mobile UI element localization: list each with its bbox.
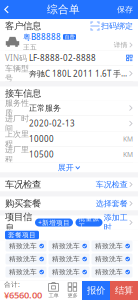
staticText: 进厂时间	[5, 114, 29, 133]
staticText: 进厂里程	[5, 145, 29, 164]
staticText: 自费	[64, 34, 74, 40]
button[interactable]: 精致洗车	[5, 240, 46, 251]
button[interactable]: 粤B88888	[0, 33, 138, 50]
staticText: 合计:	[4, 280, 20, 289]
staticText: 添加工时	[104, 213, 128, 232]
staticText: 车辆型号	[5, 64, 29, 83]
staticText: 上次里程	[5, 129, 29, 149]
button[interactable]: 上次里程	[0, 131, 138, 147]
staticText: VIN码	[5, 53, 27, 63]
staticText: 正常服务	[29, 103, 61, 113]
staticText: 精致洗车	[95, 242, 123, 250]
staticText: 粤B88888	[23, 32, 61, 42]
staticText: 车况检查	[96, 180, 128, 189]
staticText: 工单	[48, 292, 58, 299]
button[interactable]: 保存	[112, 0, 138, 19]
button[interactable]: VIN码	[0, 50, 138, 66]
button[interactable]: +新增项目	[35, 218, 73, 226]
button[interactable]: 报价	[82, 281, 110, 300]
button[interactable]: 精致洗车	[5, 266, 46, 277]
button[interactable]: 车况检查	[96, 180, 133, 189]
staticText: 精致洗车	[9, 242, 37, 250]
staticText: 选择套餐	[96, 199, 128, 208]
button[interactable]: 添加工时	[104, 213, 133, 232]
button[interactable]: 批量派工	[75, 218, 102, 226]
button[interactable]: 选择套餐	[96, 199, 133, 208]
staticText: 10000	[29, 134, 54, 144]
button[interactable]: 精致洗车	[48, 253, 89, 264]
button[interactable]: 进厂里程	[0, 147, 138, 162]
staticText: 接车信息	[5, 88, 41, 99]
button[interactable]: 扫码绑定	[90, 21, 133, 31]
button[interactable]: 精致洗车	[91, 240, 132, 251]
staticText: LF-8888-02-8888	[29, 53, 96, 63]
staticText: 保存	[117, 5, 133, 14]
button[interactable]: 进厂时间	[0, 116, 138, 131]
staticText: 报价	[87, 285, 105, 296]
button[interactable]: 精致洗车	[48, 240, 89, 251]
staticText: 客户信息	[5, 20, 41, 32]
staticText: 2020-02-13	[29, 118, 75, 129]
staticText: ¥6560.00	[4, 289, 42, 300]
button[interactable]: 精致洗车	[5, 253, 46, 264]
staticText: 购买套餐	[5, 198, 41, 209]
staticText: KM	[123, 150, 133, 159]
staticText: 10500	[29, 149, 54, 160]
staticText: 王五	[23, 43, 37, 51]
staticText: 车况检查	[5, 179, 41, 190]
button[interactable]: 服务性质	[0, 100, 138, 116]
button[interactable]: 车辆型号	[0, 66, 138, 81]
staticText: 详情	[114, 41, 128, 49]
staticText: KM	[123, 135, 133, 143]
staticText: 精致洗车	[95, 268, 123, 276]
staticText: 展开	[58, 163, 74, 172]
staticText: 结算	[115, 285, 133, 296]
staticText: 综合单	[47, 3, 80, 16]
staticText: 精致洗车	[52, 268, 80, 276]
button[interactable]: 结算	[110, 281, 138, 300]
staticText: 扫码绑定	[101, 21, 133, 31]
staticText: +新增项目	[38, 218, 70, 227]
staticText: 精致洗车	[9, 268, 37, 276]
staticText: 精致洗车	[52, 255, 80, 263]
staticText: 更多	[67, 292, 77, 299]
button[interactable]: 精致洗车	[91, 253, 132, 264]
button[interactable]: Back	[0, 0, 15, 19]
button[interactable]: 套餐项目	[5, 231, 39, 239]
staticText: 套餐项目	[8, 231, 36, 239]
staticText: 项目信息	[5, 211, 32, 234]
staticText: 服务性质	[5, 98, 29, 118]
button[interactable]: 精致洗车	[91, 266, 132, 277]
button[interactable]: 精致洗车	[48, 266, 89, 277]
staticText: 精致洗车	[95, 255, 123, 263]
staticText: 奔驰C 180L 2011 1.6T 手自一体	[29, 68, 127, 79]
button[interactable]: 更多	[63, 281, 82, 300]
staticText: 精致洗车	[52, 242, 80, 250]
button[interactable]: 工单	[44, 281, 63, 300]
staticText: 精致洗车	[9, 255, 37, 263]
button[interactable]: 展开	[0, 162, 138, 172]
staticText: 批量派工	[78, 214, 99, 231]
